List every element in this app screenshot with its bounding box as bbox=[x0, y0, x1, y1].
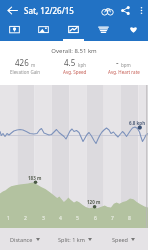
staticText: Avg. Speed bbox=[63, 69, 87, 75]
staticText: Overall: 8.51 km bbox=[0, 47, 148, 55]
staticText: Distance bbox=[10, 236, 33, 243]
staticText: 7 bbox=[111, 215, 114, 222]
staticText: Elevation Gain bbox=[10, 69, 41, 75]
staticText: 4 bbox=[59, 215, 62, 222]
staticText: 5 bbox=[76, 215, 79, 222]
staticText: m bbox=[31, 62, 36, 68]
button[interactable]: Photos bbox=[29, 20, 58, 41]
staticText: 6 bbox=[94, 215, 97, 222]
button[interactable]: Speed bbox=[99, 228, 148, 250]
button[interactable]: More options bbox=[134, 0, 148, 20]
staticText: bpm bbox=[121, 62, 131, 68]
button[interactable]: Split: 1 km bbox=[50, 228, 99, 250]
staticText: Avg. Heart rate bbox=[108, 69, 140, 75]
staticText: 183 m bbox=[28, 175, 42, 181]
button[interactable]: Distance bbox=[0, 228, 50, 250]
button[interactable]: Map bbox=[0, 20, 29, 41]
button[interactable]: Share bbox=[117, 0, 134, 20]
staticText: - bbox=[116, 57, 119, 68]
staticText: Sat, 12/26/15 bbox=[24, 5, 74, 16]
staticText: Speed bbox=[112, 236, 128, 243]
button[interactable]: Charts bbox=[58, 20, 88, 41]
button[interactable]: Activity type bbox=[98, 0, 117, 20]
staticText: 6.8 kph bbox=[129, 120, 146, 126]
staticText: 2 bbox=[24, 215, 27, 222]
staticText: 426 bbox=[15, 57, 29, 68]
staticText: 3 bbox=[42, 215, 45, 222]
staticText: 120 m bbox=[87, 199, 101, 205]
staticText: 1 bbox=[7, 215, 10, 222]
staticText: kph bbox=[78, 62, 86, 68]
button[interactable]: Splits bbox=[88, 20, 118, 41]
button[interactable]: Heart rate bbox=[118, 20, 148, 41]
staticText: Split: 1 km bbox=[58, 236, 85, 243]
button[interactable]: Back bbox=[0, 0, 24, 20]
staticText: 4.5 bbox=[64, 57, 76, 68]
staticText: 8 bbox=[128, 215, 131, 222]
